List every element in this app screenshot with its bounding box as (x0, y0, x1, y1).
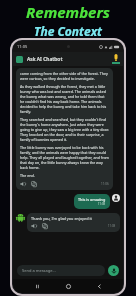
staticText: came coming from the other side of the f… (20, 71, 109, 81)
staticText: The Context (34, 23, 102, 39)
staticText: Thank you, I'm glad you enjoyed it (31, 216, 92, 221)
staticText: As they walked through the forest, they … (20, 84, 109, 114)
staticText: Remembers (26, 2, 110, 22)
button[interactable]: Thank you, I'm glad you enjoyed it (27, 213, 120, 232)
button[interactable]: Copy (31, 181, 37, 187)
button[interactable]: Upgrade (112, 54, 120, 64)
staticText: They searched and searched, but they cou… (20, 117, 109, 142)
button[interactable]: Voice input (108, 265, 119, 276)
button[interactable]: Back (92, 279, 106, 293)
button[interactable]: This is amazing (74, 194, 110, 209)
staticText: Send a message... (22, 268, 56, 273)
staticText: Ask AI Chatbot (27, 56, 63, 63)
button[interactable]: came coming from the other side of the f… (16, 68, 113, 190)
staticText: The end. (20, 173, 35, 178)
staticText: 11:08 (108, 224, 116, 228)
staticText: This is amazing (78, 197, 106, 202)
staticText: 11:06 (101, 182, 109, 186)
button[interactable]: Send a message... (17, 265, 105, 276)
staticText: 11:08 (98, 202, 106, 206)
button[interactable]: Menu (16, 56, 23, 63)
button[interactable]: Home (61, 279, 75, 293)
staticText: The little bunny was overjoyed to be bac… (20, 145, 109, 170)
button[interactable]: Read aloud (20, 181, 26, 187)
staticText: 11:05 (17, 44, 28, 49)
button[interactable]: Read aloud (31, 223, 37, 229)
button[interactable]: Recents (30, 279, 44, 293)
button[interactable]: Copy (42, 223, 48, 229)
